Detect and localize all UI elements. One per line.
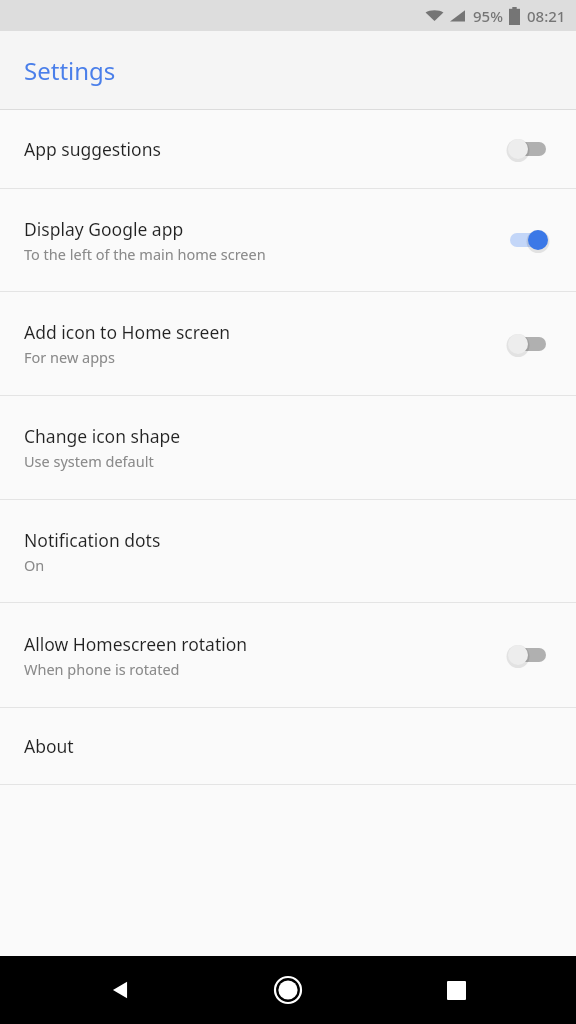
staticText: Use system default bbox=[24, 451, 154, 471]
button[interactable]: Toggle off bbox=[500, 326, 556, 362]
staticText: Add icon to Home screen bbox=[24, 320, 231, 344]
staticText: Notification dots bbox=[24, 528, 161, 552]
button[interactable]: Allow Homescreen rotation bbox=[0, 603, 576, 707]
staticText: On bbox=[24, 555, 45, 575]
staticText: 95% bbox=[473, 6, 503, 26]
button[interactable]: Back bbox=[72, 956, 168, 1024]
staticText: Change icon shape bbox=[24, 424, 181, 448]
button[interactable]: Toggle on bbox=[500, 222, 556, 258]
staticText: Settings bbox=[24, 54, 116, 87]
button[interactable]: Home bbox=[240, 956, 336, 1024]
button[interactable]: Change icon shape bbox=[0, 396, 576, 499]
staticText: Allow Homescreen rotation bbox=[24, 632, 248, 656]
staticText: About bbox=[24, 734, 74, 758]
button[interactable]: App suggestions bbox=[0, 110, 576, 188]
staticText: 08:21 bbox=[527, 6, 566, 26]
button[interactable]: Toggle off bbox=[500, 637, 556, 673]
button[interactable]: Add icon to Home screen bbox=[0, 292, 576, 395]
button[interactable]: Recent apps bbox=[408, 956, 504, 1024]
button[interactable]: About bbox=[0, 708, 576, 784]
button[interactable]: Display Google app bbox=[0, 189, 576, 291]
staticText: Display Google app bbox=[24, 217, 184, 241]
button[interactable]: Toggle off bbox=[500, 131, 556, 167]
staticText: App suggestions bbox=[24, 137, 161, 161]
staticText: To the left of the main home screen bbox=[24, 244, 266, 264]
staticText: When phone is rotated bbox=[24, 659, 180, 679]
staticText: For new apps bbox=[24, 347, 115, 367]
button[interactable]: Notification dots bbox=[0, 500, 576, 602]
